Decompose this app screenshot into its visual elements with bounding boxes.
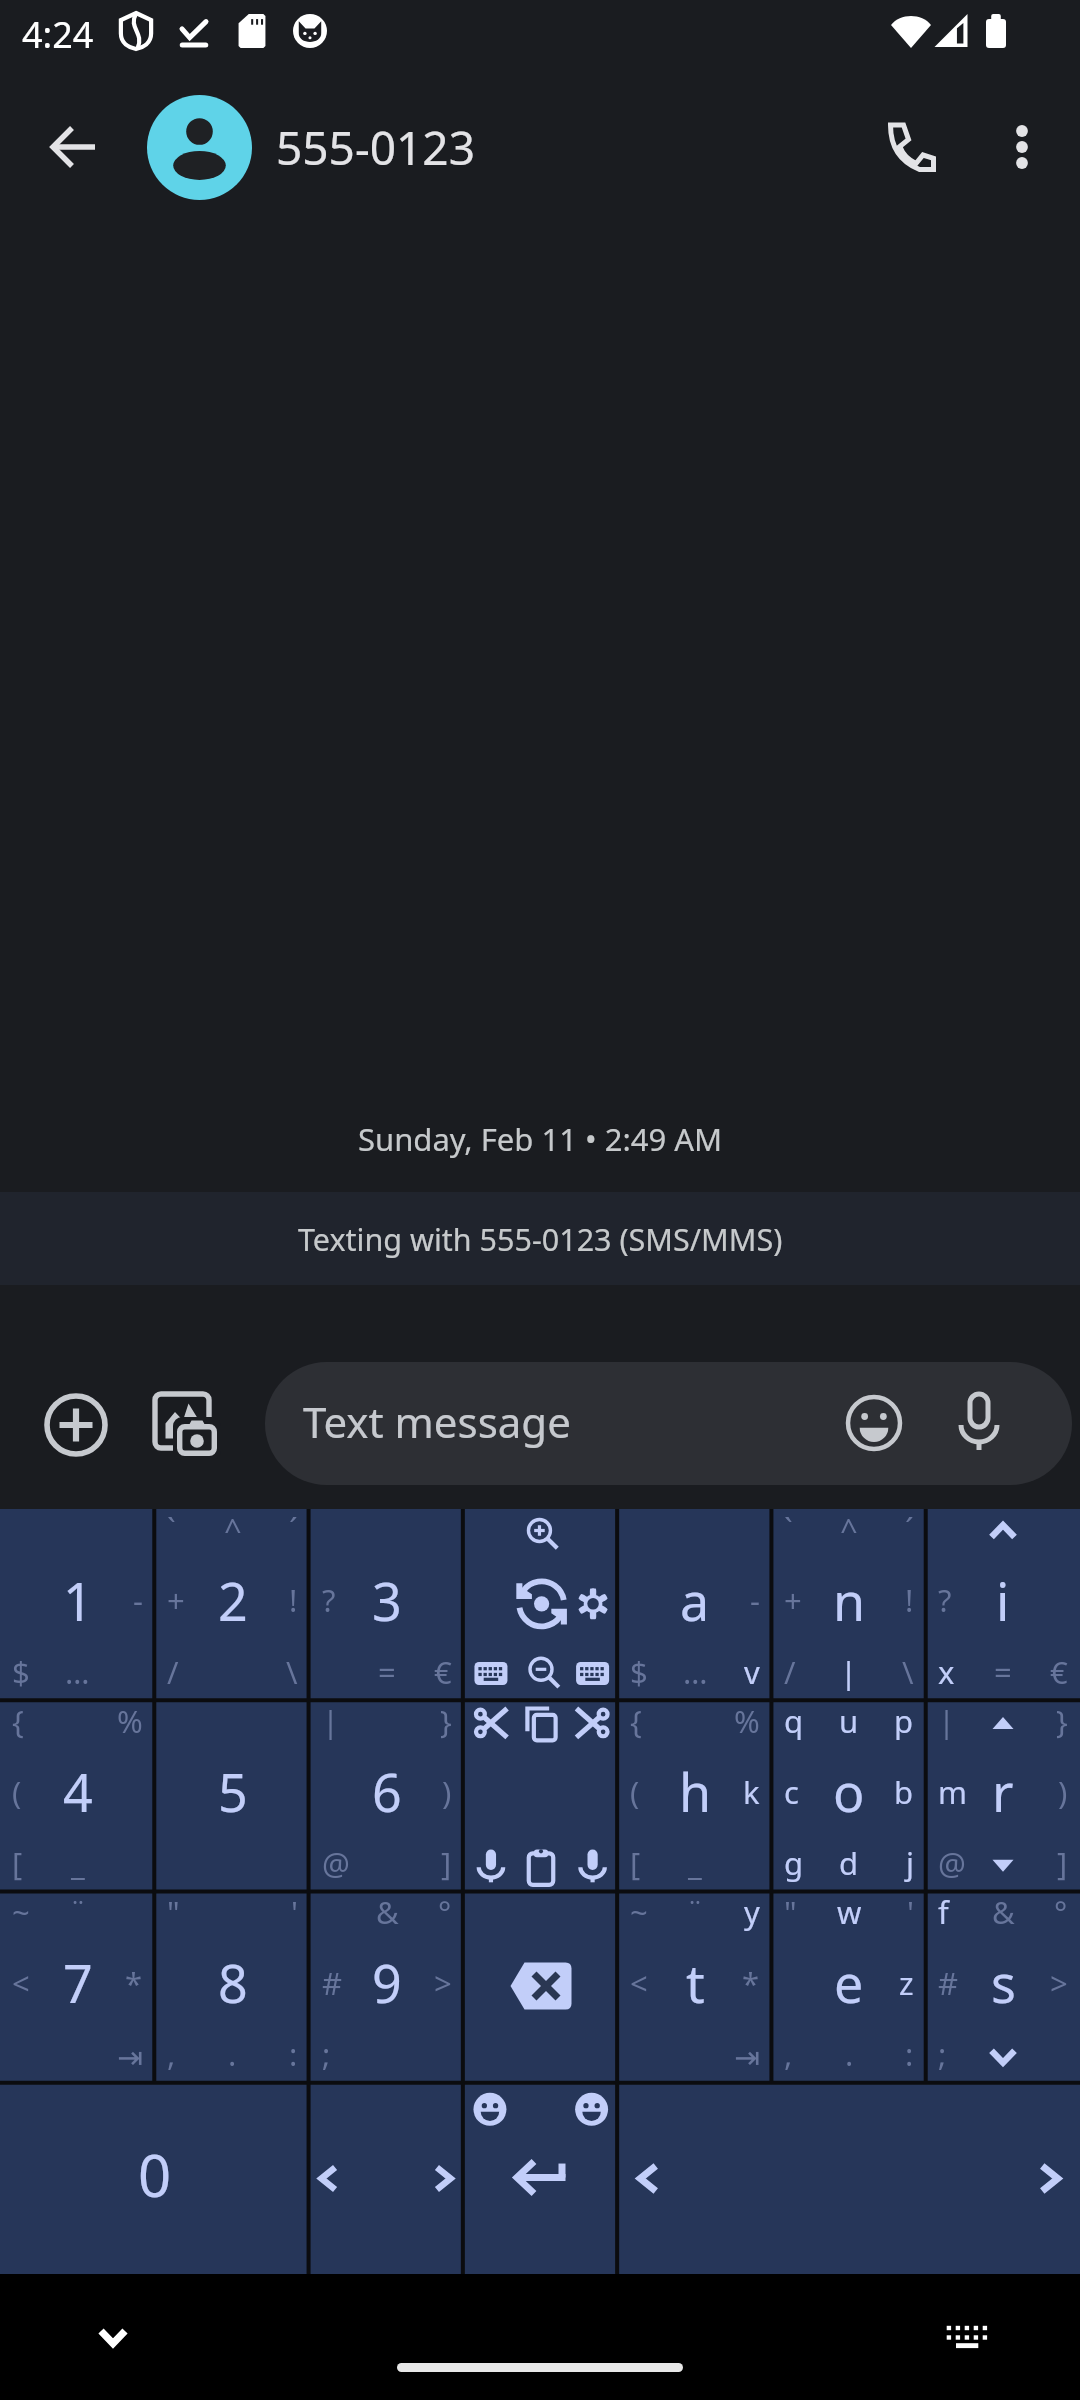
staticText: ⇥ (117, 2039, 143, 2075)
staticText: " (167, 1891, 180, 1933)
staticText: Sunday, Feb 11 • 2:49 AM (358, 1118, 723, 1160)
button[interactable]: Back (18, 92, 128, 202)
staticText: 9 (372, 1947, 402, 2018)
staticText: a (680, 1565, 710, 1636)
staticText: $ (12, 1651, 30, 1693)
staticText: 5 (218, 1756, 248, 1827)
staticText: r (992, 1756, 1014, 1827)
button[interactable]: 3 (310, 1509, 464, 1701)
staticText: ° (438, 1891, 452, 1933)
staticText: . (845, 2033, 854, 2075)
staticText: 7 (63, 1947, 93, 2018)
staticText: # (322, 1962, 343, 2004)
staticText: * (742, 1962, 760, 2004)
button[interactable]: Take photo (136, 1375, 236, 1475)
button[interactable]: Backspace (464, 1892, 618, 2083)
staticText: ~ (12, 1891, 30, 1933)
staticText: o (833, 1756, 865, 1827)
staticText: > (1050, 1962, 1068, 2004)
button[interactable]: 0 (0, 2083, 309, 2274)
staticText: ! (905, 1579, 914, 1621)
staticText: f (938, 1891, 949, 1933)
button[interactable]: h (618, 1701, 772, 1892)
button[interactable]: Keyboard settings (464, 1509, 618, 1701)
staticText: ⇥ (734, 2039, 760, 2075)
staticText: ¨ (69, 1891, 87, 1933)
button[interactable]: 5 (155, 1701, 310, 1892)
button[interactable]: Text message (265, 1362, 1072, 1485)
button[interactable]: Cut copy paste (464, 1701, 618, 1892)
button[interactable]: 2 (155, 1509, 310, 1701)
staticText: 1 (63, 1565, 93, 1636)
button[interactable]: 6 (310, 1701, 464, 1892)
staticText: & (376, 1891, 399, 1933)
button[interactable]: Call (856, 92, 966, 202)
staticText: - (750, 1579, 760, 1621)
staticText: 2 (218, 1565, 248, 1636)
staticText: _ (71, 1842, 85, 1884)
staticText: ? (322, 1579, 336, 1621)
button[interactable]: Cursor left and right (309, 2083, 463, 2274)
button[interactable]: Switch keyboard (919, 2289, 1015, 2385)
button[interactable]: Add attachment (26, 1375, 126, 1475)
button[interactable]: Emoji (828, 1377, 920, 1469)
button[interactable]: 4 (0, 1701, 155, 1892)
button[interactable]: e (772, 1892, 926, 2083)
staticText: ! (289, 1579, 298, 1621)
button[interactable]: 7 (0, 1892, 155, 2083)
button[interactable]: a (618, 1509, 772, 1701)
staticText: , (784, 2033, 793, 2075)
staticText: @ (938, 1842, 966, 1884)
staticText: 3 (372, 1565, 402, 1636)
button[interactable]: 9 (310, 1892, 464, 2083)
staticText: < (630, 1962, 648, 2004)
staticText: ' (291, 1891, 298, 1933)
button[interactable]: Voice input (933, 1375, 1025, 1467)
staticText: ' (907, 1891, 914, 1933)
button[interactable]: 555-0123 (147, 72, 475, 222)
staticText: : (289, 2033, 298, 2075)
staticText: ; (938, 2033, 947, 2075)
staticText: u (839, 1700, 859, 1742)
staticText: ° (1054, 1891, 1068, 1933)
staticText: ] (441, 1842, 452, 1884)
staticText: h (679, 1756, 712, 1827)
button[interactable]: Cursor up and down (926, 1701, 1080, 1892)
staticText: Text message (303, 1393, 571, 1450)
button[interactable]: Shift (926, 1509, 1080, 1701)
button[interactable]: Space (617, 2083, 1080, 2274)
button[interactable]: t (618, 1892, 772, 2083)
button[interactable]: o (772, 1701, 926, 1892)
staticText: \ (902, 1651, 914, 1693)
staticText: n (833, 1565, 866, 1636)
staticText: i (996, 1565, 1010, 1636)
staticText: q (784, 1700, 804, 1742)
staticText: @ (322, 1842, 350, 1884)
staticText: > (434, 1962, 452, 2004)
staticText: \ (286, 1651, 298, 1693)
staticText: ? (938, 1579, 952, 1621)
staticText: d (839, 1842, 859, 1884)
staticText: 6 (372, 1756, 402, 1827)
staticText: e (834, 1947, 864, 2018)
staticText: [ (630, 1842, 641, 1884)
staticText: ` (167, 1508, 176, 1550)
staticText: x (938, 1651, 955, 1693)
staticText: ¨ (686, 1891, 704, 1933)
staticText: ´ (905, 1508, 914, 1550)
staticText: g (784, 1842, 804, 1884)
button[interactable]: More options (967, 92, 1077, 202)
button[interactable]: Enter (463, 2083, 617, 2274)
staticText: w (837, 1891, 862, 1933)
button[interactable]: n (772, 1509, 926, 1701)
button[interactable]: Hide keyboard (65, 2289, 161, 2385)
staticText: … (683, 1651, 708, 1693)
staticText: 0 (138, 2135, 172, 2214)
button[interactable]: s (926, 1892, 1080, 2083)
button[interactable]: 8 (155, 1892, 310, 2083)
staticText: _ (688, 1842, 702, 1884)
button[interactable]: 1 (0, 1509, 155, 1701)
staticText: s (991, 1947, 1016, 2018)
staticText: } (1056, 1700, 1068, 1742)
staticText: ] (1057, 1842, 1068, 1884)
